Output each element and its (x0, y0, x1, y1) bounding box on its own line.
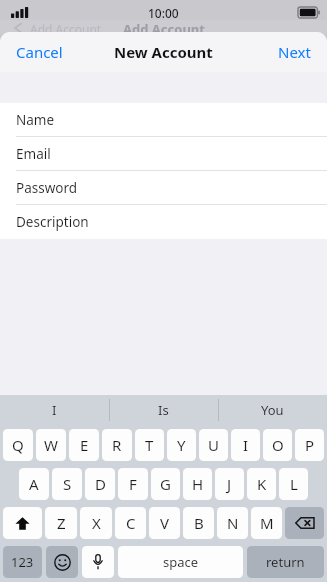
staticText: Is (158, 401, 169, 419)
staticText: M (260, 513, 274, 533)
button[interactable]: 123 (3, 546, 42, 578)
button[interactable]: Q (3, 429, 33, 461)
button[interactable]: Password (0, 171, 327, 205)
button[interactable]: Dictation (82, 546, 114, 578)
button[interactable]: V (149, 507, 180, 539)
button[interactable]: J (215, 468, 244, 500)
staticText: Add Account (123, 20, 205, 38)
button[interactable]: B (183, 507, 214, 539)
button[interactable]: Backspace (285, 507, 324, 539)
staticText: J (227, 474, 232, 494)
button[interactable]: You (218, 395, 327, 425)
button[interactable]: F (118, 468, 148, 500)
button[interactable]: U (199, 429, 228, 461)
button[interactable]: G (151, 468, 180, 500)
button[interactable]: Shift (3, 507, 42, 539)
button[interactable]: K (247, 468, 276, 500)
button[interactable]: S (52, 468, 82, 500)
staticText: E (80, 435, 89, 455)
button[interactable]: Z (45, 507, 77, 539)
staticText: Y (177, 435, 186, 455)
staticText: Z (57, 513, 66, 533)
staticText: return (266, 553, 305, 571)
staticText: F (129, 474, 137, 494)
staticText: O (272, 435, 284, 455)
button[interactable]: Emoji (46, 546, 78, 578)
staticText: Next (278, 42, 311, 62)
staticText: H (192, 474, 204, 494)
button[interactable]: C (115, 507, 146, 539)
staticText: B (194, 513, 204, 533)
button[interactable]: space (118, 546, 243, 578)
button[interactable]: E (69, 429, 99, 461)
staticText: A (29, 474, 39, 494)
staticText: D (95, 474, 106, 494)
staticText: Name (16, 111, 55, 129)
staticText: C (126, 513, 136, 533)
staticText: X (92, 513, 101, 533)
button[interactable]: P (295, 429, 324, 461)
button[interactable]: D (85, 468, 115, 500)
button[interactable]: Name (0, 103, 327, 137)
button[interactable]: return (247, 546, 324, 578)
button[interactable]: Cancel (0, 34, 79, 70)
button[interactable]: T (135, 429, 164, 461)
button[interactable]: W (36, 429, 66, 461)
button[interactable]: Is (109, 395, 218, 425)
button[interactable]: H (183, 468, 212, 500)
staticText: Email (16, 145, 51, 163)
staticText: 10:00 (148, 5, 179, 21)
staticText: You (261, 401, 284, 419)
button[interactable]: I (231, 429, 260, 461)
staticText: U (208, 435, 219, 455)
staticText: V (160, 513, 170, 533)
staticText: Add Account (30, 21, 102, 37)
staticText: R (112, 435, 122, 455)
staticText: W (44, 435, 58, 455)
button[interactable]: Description (0, 205, 327, 239)
staticText: G (160, 474, 171, 494)
staticText: Description (16, 213, 89, 231)
staticText: Q (12, 435, 24, 455)
staticText: P (305, 435, 315, 455)
staticText: K (257, 474, 267, 494)
staticText: I (52, 401, 57, 419)
staticText: 123 (11, 553, 34, 571)
staticText: N (227, 513, 239, 533)
button[interactable]: X (80, 507, 112, 539)
button[interactable]: R (102, 429, 132, 461)
staticText: T (145, 435, 154, 455)
staticText: S (63, 474, 72, 494)
button[interactable]: Y (167, 429, 196, 461)
button[interactable]: N (217, 507, 248, 539)
button[interactable]: A (19, 468, 49, 500)
staticText: space (163, 553, 199, 571)
staticText: L (290, 474, 298, 494)
staticText: Cancel (16, 42, 63, 62)
staticText: New Account (114, 42, 213, 62)
staticText: I (243, 435, 249, 455)
button[interactable]: I (0, 395, 109, 425)
button[interactable]: O (263, 429, 292, 461)
button[interactable]: L (279, 468, 308, 500)
staticText: Password (16, 179, 78, 197)
button[interactable]: Email (0, 137, 327, 171)
button[interactable]: Next (262, 34, 327, 70)
button[interactable]: M (251, 507, 282, 539)
